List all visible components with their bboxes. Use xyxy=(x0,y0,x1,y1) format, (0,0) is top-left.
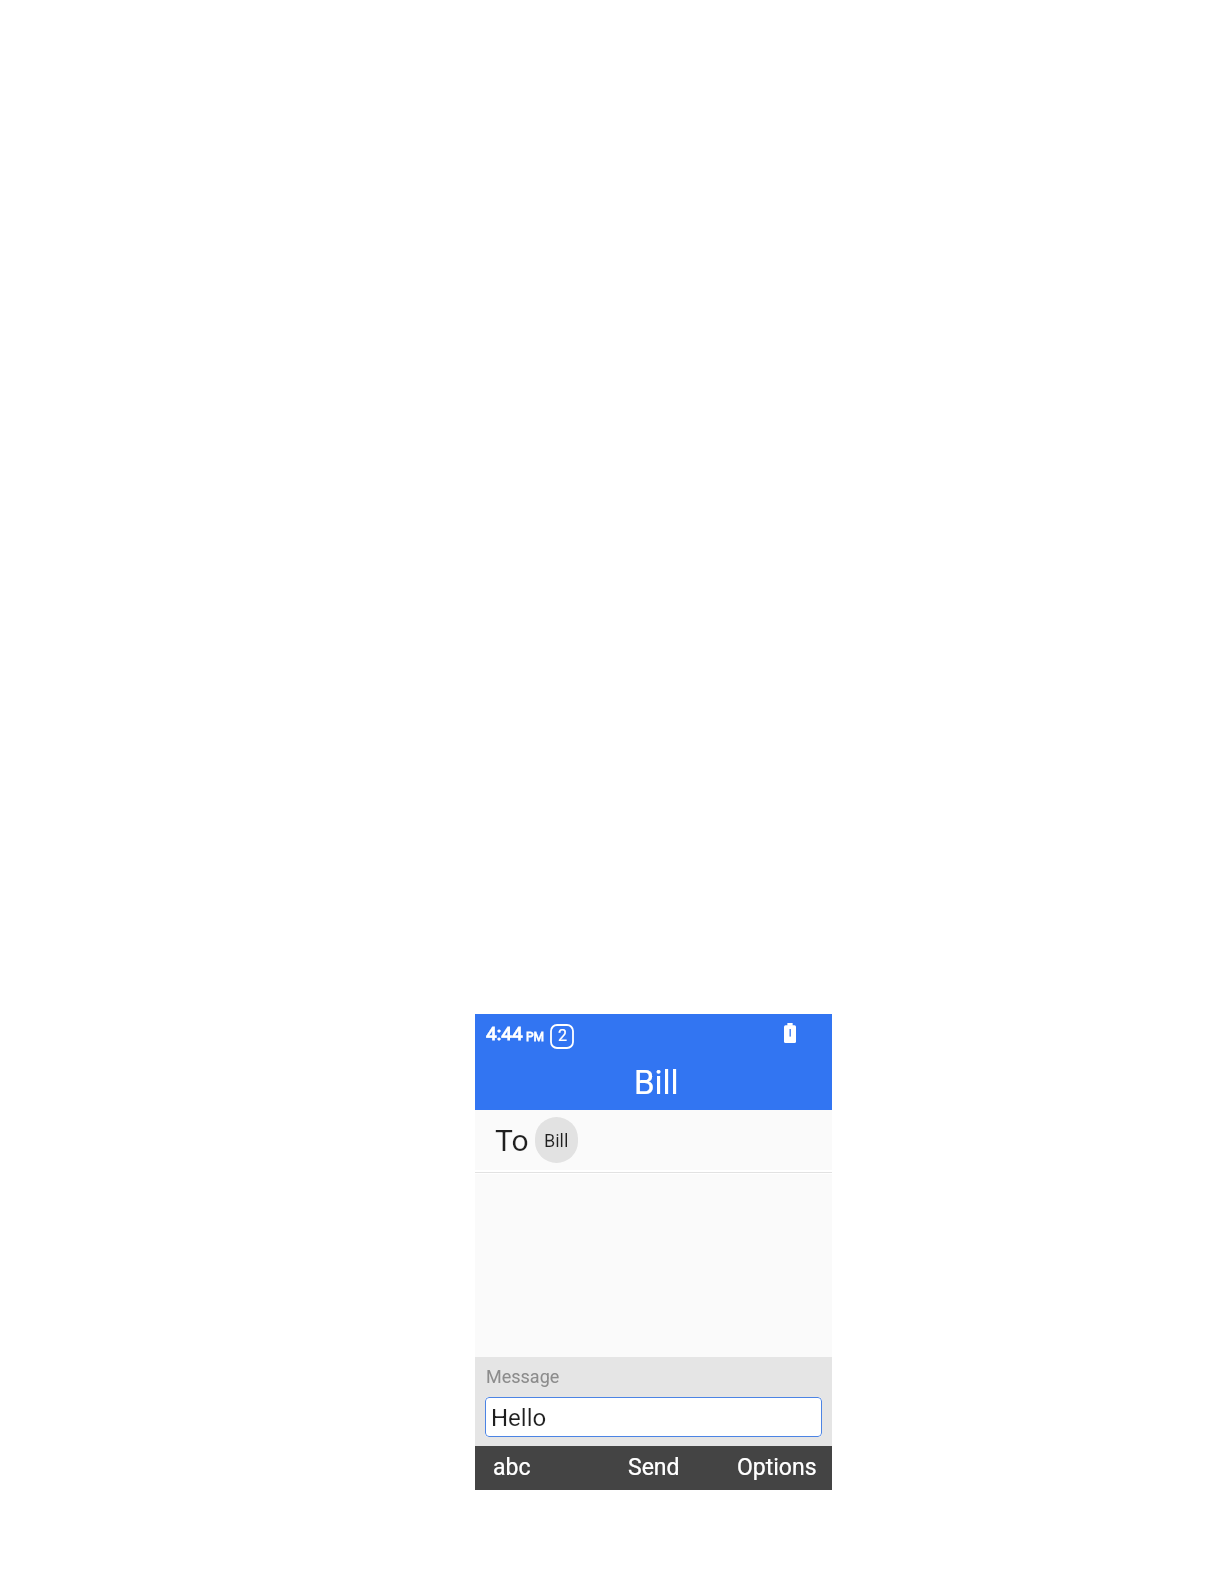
staticText: PM xyxy=(526,1030,545,1044)
staticText: 4:44 xyxy=(486,1022,523,1044)
other: SIM 2 xyxy=(551,1025,573,1048)
staticText: To xyxy=(495,1123,529,1158)
staticText: Message xyxy=(486,1366,560,1387)
button[interactable]: Hello xyxy=(485,1397,822,1437)
staticText: abc xyxy=(493,1454,531,1481)
button[interactable]: Bill xyxy=(535,1117,578,1163)
staticText: Hello xyxy=(491,1404,547,1432)
staticText: Bill xyxy=(544,1130,569,1151)
button[interactable]: abc xyxy=(475,1446,549,1490)
button[interactable]: Options xyxy=(719,1446,832,1490)
staticText: 2 xyxy=(558,1026,567,1045)
staticText: Send xyxy=(628,1454,680,1481)
staticText: Options xyxy=(737,1454,817,1481)
button[interactable]: Send xyxy=(610,1446,698,1490)
other: Battery xyxy=(784,1023,796,1043)
staticText: Bill xyxy=(634,1063,679,1102)
